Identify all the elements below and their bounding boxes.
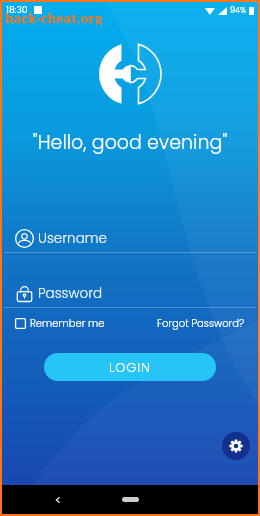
staticText: 18:30 [6,4,28,17]
staticText: Password [38,284,103,303]
staticText: LOGIN [109,358,151,376]
staticText: "Hello, good evening" [2,129,258,156]
button[interactable]: Home [122,497,139,502]
staticText: hack-cheat.org [5,9,103,25]
button[interactable]: LOGIN [44,353,216,381]
staticText: Remember me [30,316,105,330]
staticText: 94% [230,5,247,16]
button[interactable]: Settings [222,432,250,460]
button[interactable]: Username [4,224,256,253]
staticText: Username [38,229,107,248]
button[interactable]: Back [54,496,62,504]
button[interactable]: Remember me [15,316,105,330]
button[interactable]: Password [4,279,256,308]
button[interactable]: Forgot Password? [157,316,245,330]
